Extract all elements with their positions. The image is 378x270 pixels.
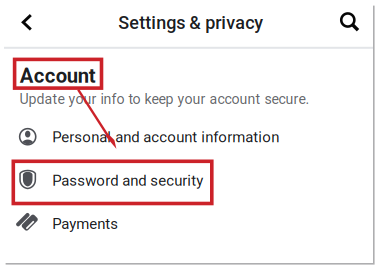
button[interactable]: Search — [331, 2, 369, 42]
staticText: Password and security — [52, 172, 203, 189]
staticText: Personal and account information — [52, 128, 279, 146]
button[interactable]: Personal and account information — [4, 119, 346, 162]
button[interactable]: Password and security — [4, 162, 346, 206]
staticText: Account — [20, 64, 96, 88]
staticText: Update your info to keep your account se… — [20, 91, 310, 107]
button[interactable]: Back — [8, 2, 46, 42]
button[interactable]: Payments — [4, 206, 346, 249]
staticText: Payments — [52, 215, 118, 233]
staticText: Settings & privacy — [118, 12, 263, 33]
